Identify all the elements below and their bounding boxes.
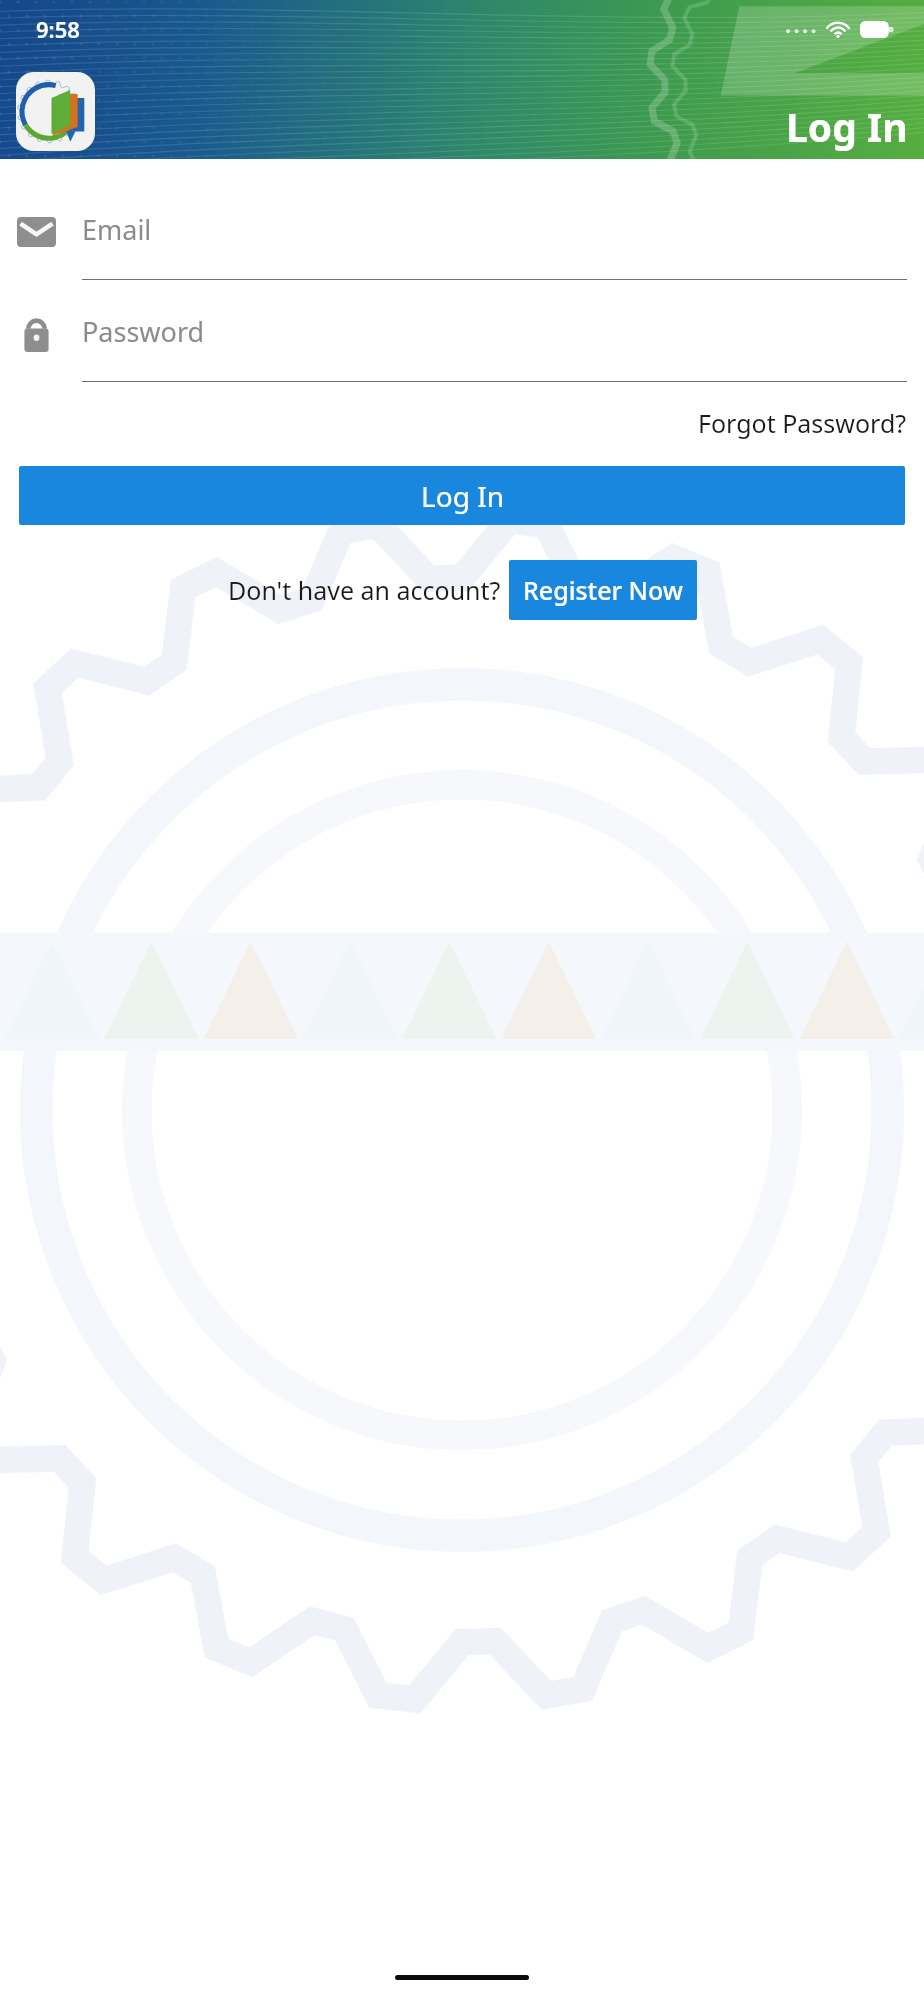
staticText: Register Now: [523, 573, 683, 607]
other: Password: [17, 314, 56, 352]
button[interactable]: Email: [17, 211, 907, 280]
button[interactable]: Register Now: [509, 560, 697, 620]
staticText: Forgot Password?: [698, 406, 907, 440]
staticText: Password: [82, 313, 205, 350]
other: Email: [17, 217, 56, 247]
staticText: Log In: [421, 477, 504, 515]
button[interactable]: Forgot Password?: [698, 402, 907, 444]
button[interactable]: Log In: [19, 466, 905, 525]
staticText: Email: [82, 211, 152, 248]
button[interactable]: Password: [17, 313, 907, 382]
staticText: Log In: [786, 100, 908, 153]
staticText: Don't have an account?: [228, 573, 501, 607]
staticText: 9:58: [36, 14, 80, 44]
